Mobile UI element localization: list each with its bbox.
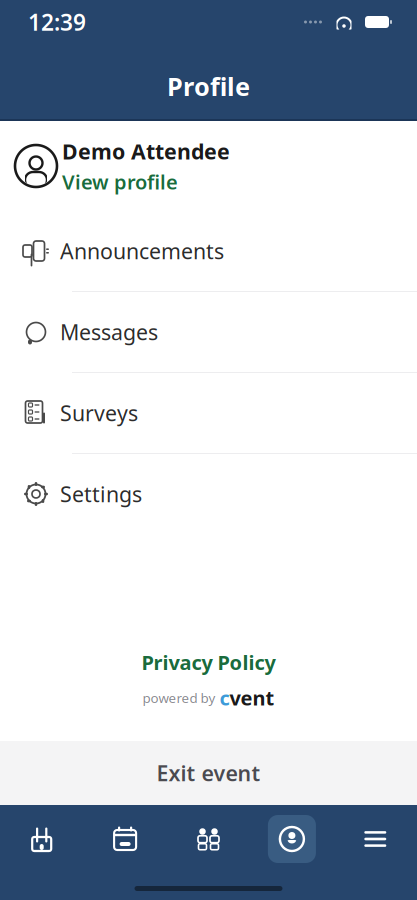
button[interactable]: Home [0, 813, 83, 865]
staticText: Messages [60, 318, 158, 346]
staticText: vent [229, 684, 274, 711]
staticText: View profile [62, 168, 178, 195]
button[interactable]: Settings [0, 454, 417, 534]
staticText: Surveys [60, 399, 138, 427]
button[interactable]: Announcements [0, 211, 417, 291]
button[interactable]: Attendees [167, 813, 250, 865]
button[interactable]: Demo Attendee [0, 121, 417, 211]
staticText: Profile [167, 69, 250, 103]
button[interactable]: Messages [0, 292, 417, 372]
button[interactable]: Exit event [0, 741, 417, 805]
button[interactable]: More [334, 813, 417, 865]
button[interactable]: Schedule [83, 813, 167, 865]
staticText: Exit event [156, 759, 260, 787]
staticText: Announcements [60, 237, 224, 265]
staticText: Privacy Policy [141, 649, 275, 675]
staticText: powered by [142, 689, 215, 707]
staticText: c [219, 684, 229, 711]
staticText: 12:39 [28, 7, 86, 37]
staticText: Settings [60, 480, 142, 508]
button[interactable]: Privacy Policy [131, 647, 285, 677]
button[interactable]: Profile [250, 813, 334, 865]
staticText: Demo Attendee [62, 137, 230, 165]
button[interactable]: Surveys [0, 373, 417, 453]
